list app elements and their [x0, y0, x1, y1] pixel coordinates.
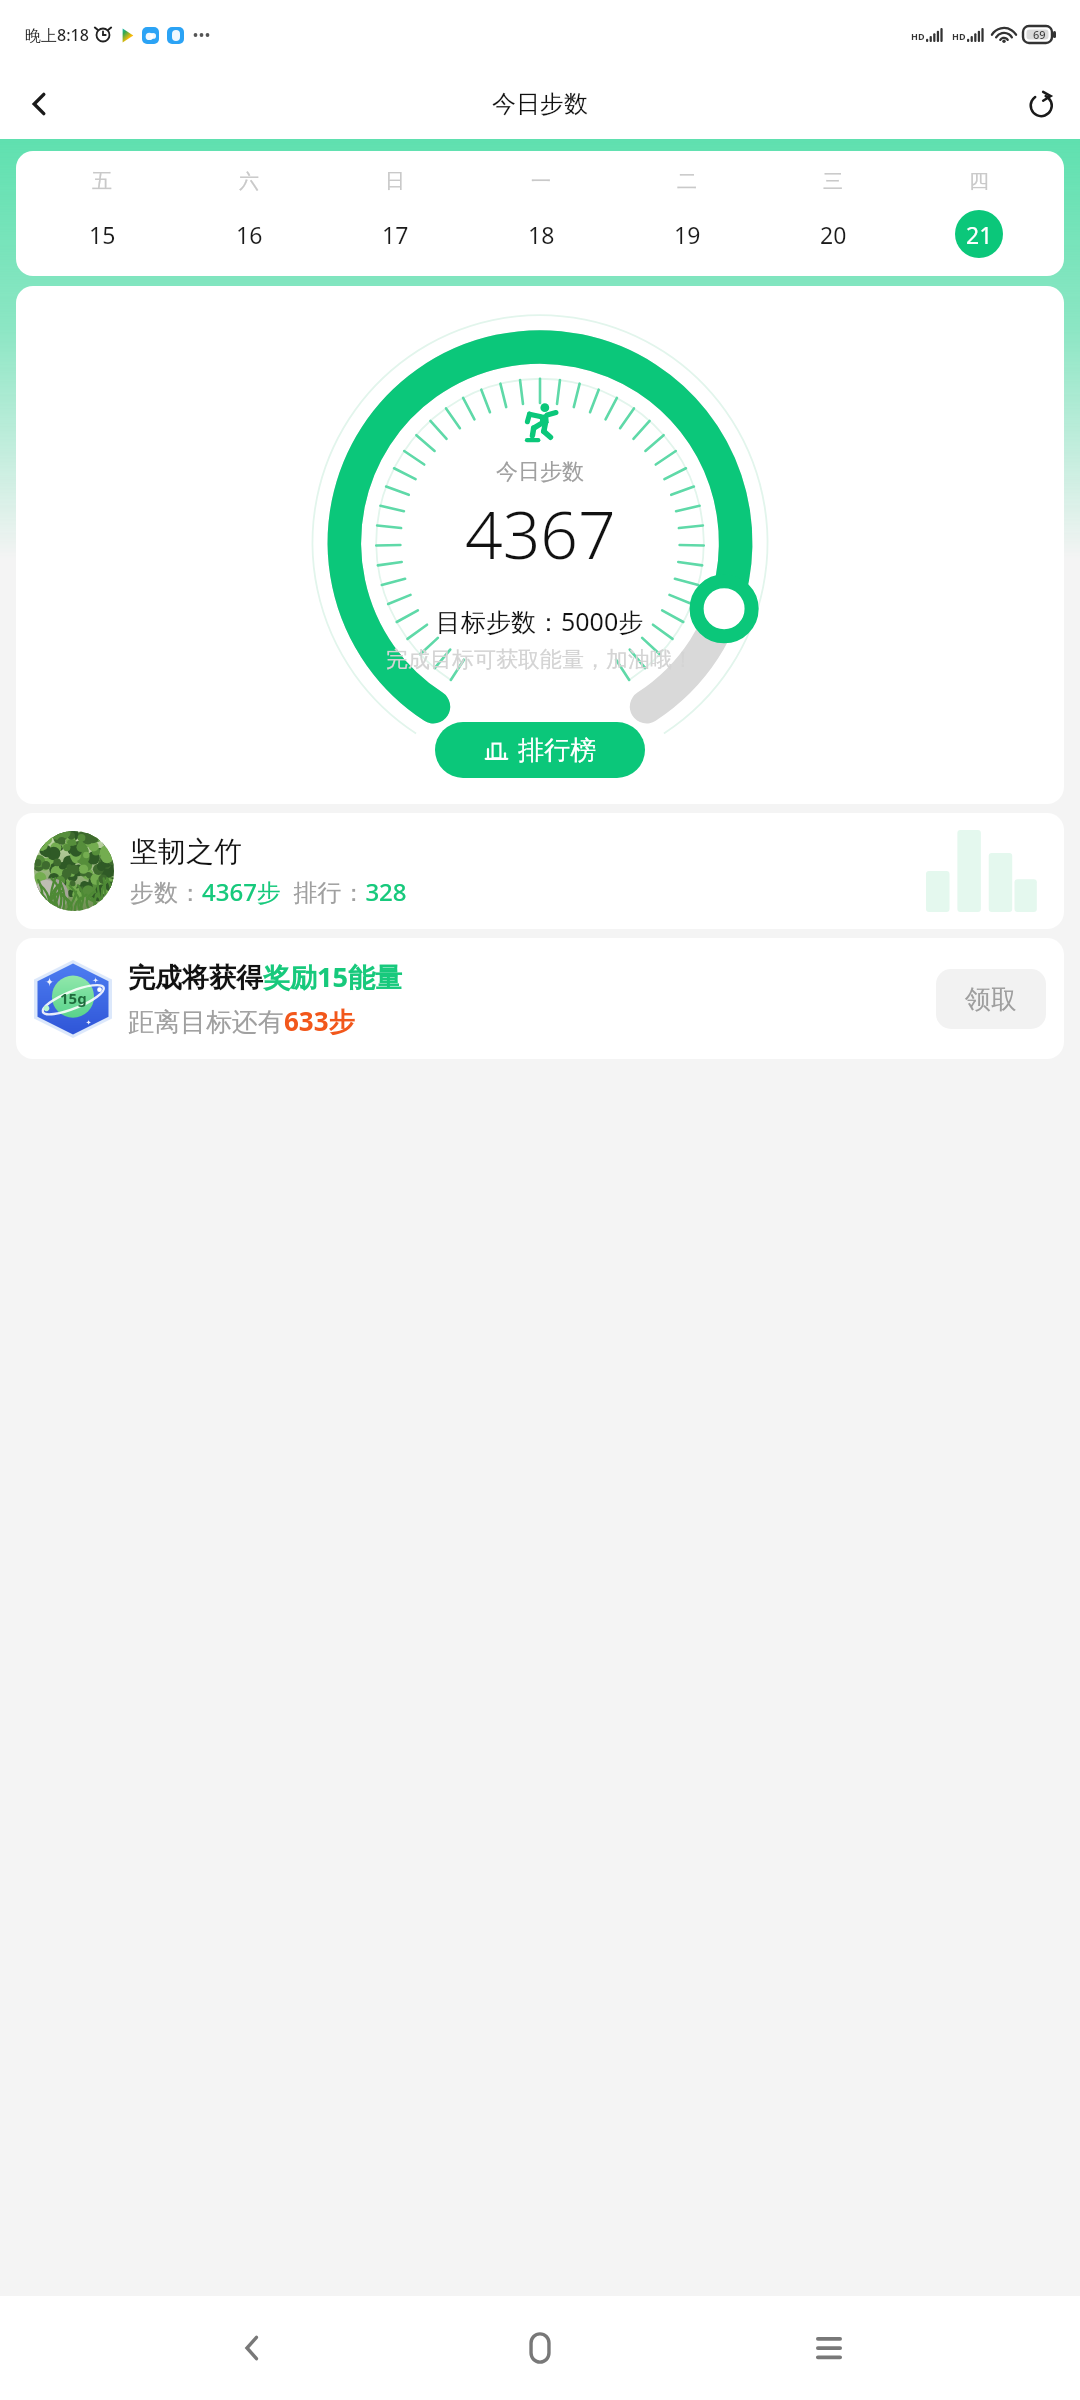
- staticText: 18: [528, 219, 555, 250]
- staticText: 今日步数: [496, 458, 584, 486]
- staticText: 日: [385, 169, 405, 194]
- button[interactable]: 坚韧之竹: [16, 813, 1064, 929]
- staticText: 15g: [60, 988, 87, 1008]
- button[interactable]: 领取: [936, 969, 1046, 1029]
- staticText: 19: [674, 219, 701, 250]
- staticText: 完成将获得奖励15能量: [128, 958, 402, 995]
- button[interactable]: 五: [16, 151, 1064, 276]
- staticText: 一: [531, 169, 551, 194]
- button[interactable]: 15: [78, 210, 126, 258]
- staticText: 四: [969, 169, 989, 194]
- staticText: 15: [89, 219, 116, 250]
- staticText: 16: [236, 219, 263, 250]
- button[interactable]: Back: [215, 2311, 289, 2385]
- staticText: 距离目标还有633步: [128, 1003, 355, 1039]
- staticText: 今日步数: [492, 89, 588, 119]
- staticText: 排行榜: [518, 734, 596, 767]
- button[interactable]: 17: [371, 210, 419, 258]
- staticText: 六: [239, 169, 259, 194]
- button[interactable]: 19: [663, 210, 711, 258]
- staticText: 晚上8:18: [25, 24, 89, 46]
- staticText: 4367: [465, 488, 616, 578]
- button[interactable]: Share: [1014, 77, 1068, 131]
- button[interactable]: 21: [955, 210, 1003, 258]
- staticText: 三: [823, 169, 843, 194]
- staticText: 目标步数：5000步: [436, 604, 644, 638]
- staticText: 20: [820, 219, 847, 250]
- button[interactable]: Home: [503, 2311, 577, 2385]
- staticText: 完成目标可获取能量，加油哦！: [386, 646, 694, 674]
- button[interactable]: 16: [225, 210, 273, 258]
- staticText: 五: [92, 169, 112, 194]
- staticText: 坚韧之竹: [130, 834, 242, 869]
- staticText: HD: [911, 30, 925, 42]
- staticText: 69: [1033, 27, 1046, 42]
- button[interactable]: Back: [12, 77, 66, 131]
- button[interactable]: 20: [809, 210, 857, 258]
- staticText: 21: [966, 219, 993, 250]
- staticText: 二: [677, 169, 697, 194]
- button[interactable]: Recent apps: [792, 2311, 866, 2385]
- staticText: 步数：4367步 排行：328: [130, 875, 407, 908]
- button[interactable]: 18: [517, 210, 565, 258]
- button[interactable]: 排行榜: [435, 722, 645, 778]
- staticText: HD: [952, 30, 966, 42]
- staticText: 17: [382, 219, 409, 250]
- button[interactable]: 15g: [16, 938, 1064, 1059]
- staticText: 领取: [965, 983, 1017, 1016]
